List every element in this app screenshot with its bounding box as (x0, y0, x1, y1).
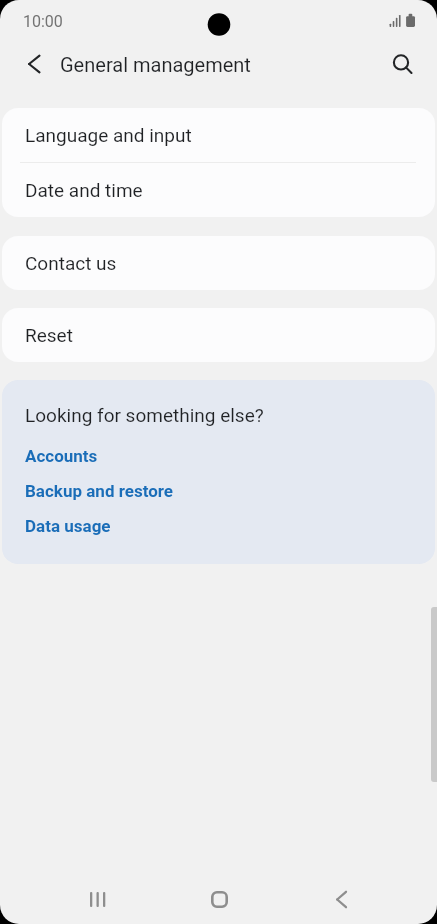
button[interactable]: Contact us (2, 236, 435, 290)
staticText: Reset (25, 324, 73, 346)
staticText: Data usage (25, 516, 111, 536)
staticText: 10:00 (23, 12, 63, 31)
staticText: Language and input (25, 124, 192, 146)
button[interactable]: Back (13, 40, 61, 88)
staticText: Accounts (25, 446, 98, 466)
button[interactable]: Back (317, 875, 366, 924)
staticText: Looking for something else? (25, 404, 264, 426)
button[interactable]: Recent apps (73, 875, 122, 924)
button[interactable]: Backup and restore (2, 481, 435, 501)
staticText: Date and time (25, 179, 143, 201)
button[interactable]: Search (378, 40, 426, 88)
button[interactable]: Language and input (2, 108, 435, 162)
button[interactable]: Data usage (2, 516, 435, 536)
staticText: Contact us (25, 252, 117, 274)
button[interactable]: Accounts (2, 446, 435, 466)
staticText: General management (60, 53, 251, 76)
button[interactable]: Date and time (2, 163, 435, 217)
staticText: Backup and restore (25, 481, 174, 501)
button[interactable]: Home (195, 875, 244, 924)
button[interactable]: Reset (2, 308, 435, 362)
